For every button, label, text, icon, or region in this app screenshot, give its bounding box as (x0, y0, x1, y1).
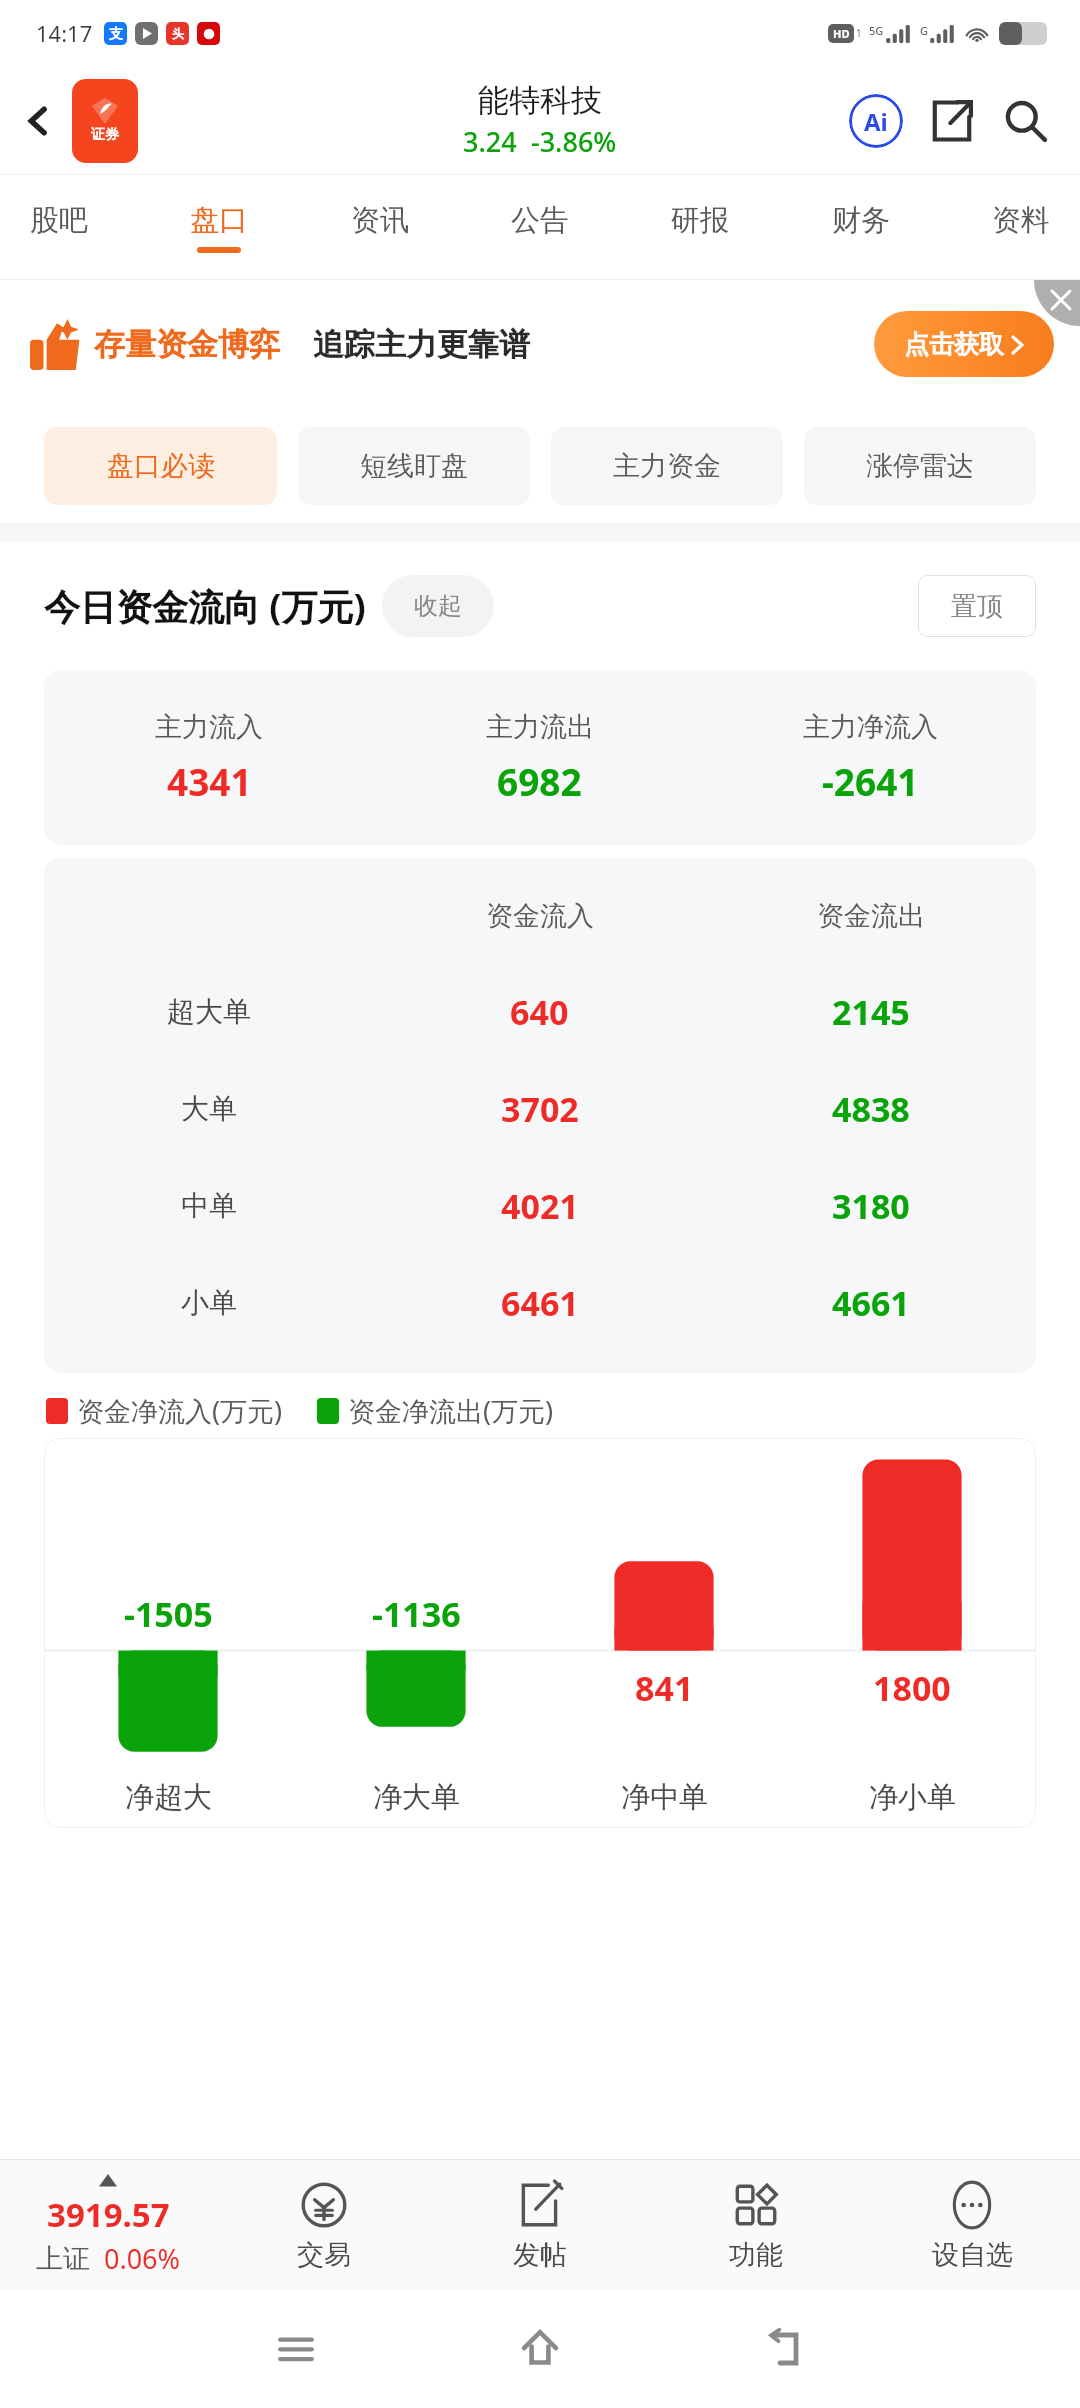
staticText: 净超大 (125, 1779, 212, 1816)
button[interactable]: Close ad (1034, 280, 1080, 326)
staticText: 14:17 (36, 18, 93, 48)
staticText: 今日资金流向 (万元) (44, 582, 366, 631)
staticText: 4021 (501, 1183, 579, 1229)
staticText: -1505 (124, 1591, 213, 1637)
staticText: 主力净流入 (803, 710, 938, 744)
staticText: 公告 (511, 202, 569, 239)
staticText: 6982 (497, 756, 582, 806)
staticText: -3.86% (531, 123, 617, 160)
staticText: Ai (864, 105, 888, 138)
button[interactable]: 涨停雷达 (804, 427, 1036, 505)
staticText: 资金净流入(万元) (77, 1392, 283, 1429)
staticText: 资金流出 (817, 899, 925, 933)
staticText: 6461 (501, 1280, 579, 1326)
button[interactable]: 置顶 (918, 575, 1036, 637)
staticText: 大单 (181, 1091, 237, 1126)
button[interactable]: 点击获取 (874, 311, 1054, 377)
staticText: 盘口 (190, 202, 248, 239)
button[interactable]: 研报 (665, 202, 735, 253)
staticText: 超大单 (167, 994, 251, 1029)
staticText: 主力流入 (155, 710, 263, 744)
staticText: 1800 (873, 1665, 951, 1711)
staticText: 追踪主力更靠谱 (313, 325, 530, 364)
button[interactable]: 收起 (382, 575, 494, 637)
button[interactable]: 盘口必读 (44, 427, 277, 505)
staticText: 盘口必读 (107, 449, 215, 483)
staticText: 净中单 (621, 1779, 708, 1816)
staticText: 3919.57 (47, 2192, 170, 2237)
button[interactable]: 交易 (216, 2160, 432, 2290)
staticText: 0.06% (104, 2240, 181, 2277)
button[interactable]: 短线盯盘 (298, 427, 530, 505)
staticText: 3702 (501, 1086, 579, 1132)
staticText: 股吧 (30, 202, 88, 239)
staticText: 上证 (36, 2242, 90, 2276)
staticText: 支 (109, 25, 123, 43)
staticText: 交易 (297, 2238, 351, 2272)
staticText: 1 (856, 26, 862, 40)
staticText: 主力资金 (613, 449, 721, 483)
staticText: 资金流入 (486, 899, 594, 933)
staticText: 资料 (992, 202, 1050, 239)
staticText: 点击获取 (904, 329, 1004, 360)
staticText: 净小单 (869, 1779, 956, 1816)
button[interactable]: 资讯 (345, 202, 415, 253)
staticText: 841 (635, 1665, 694, 1711)
staticText: 4341 (167, 756, 252, 806)
staticText: 能特科技 (478, 81, 602, 120)
staticText: 净大单 (373, 1779, 460, 1816)
staticText: 4838 (832, 1086, 910, 1132)
staticText: -1136 (372, 1591, 461, 1637)
button[interactable]: Back (8, 91, 68, 151)
staticText: 短线盯盘 (360, 449, 468, 483)
button[interactable]: 存量资金博弈 (0, 280, 1080, 408)
staticText: 资金净流出(万元) (348, 1392, 554, 1429)
button[interactable]: Share (920, 89, 984, 153)
staticText: 3.24 (463, 123, 517, 160)
staticText: 收起 (414, 591, 462, 621)
button[interactable]: 设自选 (864, 2160, 1080, 2290)
staticText: 存量资金博弈 (94, 325, 280, 364)
button[interactable]: 主力资金 (551, 427, 783, 505)
button[interactable]: Back (662, 2329, 906, 2369)
button[interactable]: AI (844, 89, 908, 153)
staticText: -2641 (822, 756, 919, 806)
button[interactable]: Home (418, 2328, 662, 2370)
button[interactable]: Search (994, 89, 1058, 153)
button[interactable]: 财务 (826, 202, 896, 253)
button[interactable]: Recents (174, 2331, 418, 2367)
staticText: 设自选 (932, 2238, 1013, 2272)
staticText: 功能 (729, 2238, 783, 2272)
staticText: 小单 (181, 1285, 237, 1320)
staticText: 头 (172, 26, 184, 41)
staticText: 5G (869, 23, 884, 38)
staticText: G (920, 23, 928, 38)
staticText: 4661 (832, 1280, 910, 1326)
staticText: HD (833, 26, 850, 41)
staticText: 发帖 (513, 2238, 567, 2272)
button[interactable]: 证券 (72, 79, 138, 163)
staticText: 主力流出 (486, 710, 594, 744)
staticText: 证券 (91, 126, 119, 144)
staticText: 置顶 (951, 590, 1003, 623)
staticText: 涨停雷达 (866, 449, 974, 483)
staticText: 财务 (832, 202, 890, 239)
button[interactable]: 股吧 (24, 202, 94, 253)
button[interactable]: 功能 (648, 2160, 864, 2290)
staticText: 640 (510, 989, 569, 1035)
button[interactable]: 3919.57 (0, 2174, 216, 2277)
button[interactable]: 资料 (986, 202, 1056, 253)
staticText: 中单 (181, 1188, 237, 1223)
staticText: 资讯 (351, 202, 409, 239)
staticText: 3180 (832, 1183, 910, 1229)
staticText: 2145 (832, 989, 910, 1035)
button[interactable]: 公告 (505, 202, 575, 253)
button[interactable]: 发帖 (432, 2160, 648, 2290)
staticText: 研报 (671, 202, 729, 239)
button[interactable]: 盘口 (184, 202, 254, 253)
